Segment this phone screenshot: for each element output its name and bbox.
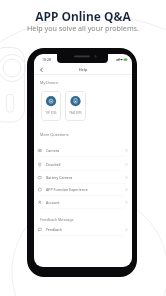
staticText: Help <box>34 67 132 72</box>
staticText: APP Online Q&A <box>0 8 166 24</box>
staticText: Account <box>46 200 60 205</box>
staticText: My Device <box>40 80 59 85</box>
staticText: Y0P E746 <box>41 111 61 115</box>
button[interactable]: Y8A0 E0Y6 <box>65 91 86 121</box>
staticText: 10:28 <box>42 57 51 62</box>
staticText: Help you solve all your problems. <box>0 23 166 33</box>
button[interactable]: Account <box>34 196 132 209</box>
staticText: Camera <box>46 148 60 153</box>
button[interactable]: Battery Camera <box>34 171 132 184</box>
button[interactable]: Y0P E746 <box>41 91 61 121</box>
staticText: Y8A0 E0Y6 <box>65 111 86 115</box>
staticText: Battery Camera <box>46 175 73 180</box>
staticText: More Questions <box>40 132 69 137</box>
button[interactable]: Doorbell <box>34 158 132 171</box>
button[interactable]: Feedback <box>34 223 132 236</box>
button[interactable]: Camera <box>34 144 132 157</box>
staticText: Doorbell <box>46 162 61 167</box>
staticText: APP Function Experience <box>46 187 88 192</box>
staticText: Feedback Message <box>40 217 74 222</box>
button[interactable] <box>37 65 46 74</box>
staticText: Feedback <box>46 227 62 232</box>
button[interactable]: APP Function Experience <box>34 183 132 196</box>
